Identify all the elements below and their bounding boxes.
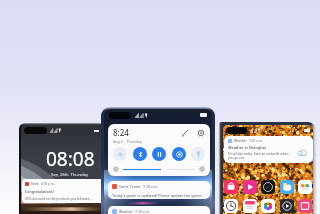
button[interactable]: App 5: [224, 199, 238, 213]
button[interactable]: Settings: [197, 129, 205, 137]
staticText: Game Center: [119, 184, 141, 189]
button[interactable]: Flashlight: [191, 147, 205, 161]
staticText: Today's game is updated! Please update t…: [112, 193, 203, 198]
button[interactable]: App 6: [243, 199, 257, 213]
button[interactable]: Store: [22, 179, 103, 203]
staticText: Weather: [234, 139, 247, 143]
staticText: Store: [31, 182, 39, 186]
button[interactable]: App 9: [298, 199, 312, 213]
staticText: Weather: [119, 209, 133, 214]
staticText: 08:08: [46, 146, 95, 172]
button[interactable]: Game Center: [108, 181, 210, 199]
staticText: 7:28 a.m.: [143, 184, 158, 189]
staticText: Weather in Shanghai: [228, 145, 266, 150]
button[interactable]: App 7: [261, 199, 275, 213]
staticText: 20% discount on the products you followe…: [25, 197, 93, 201]
button[interactable]: App 3: [280, 180, 294, 194]
staticText: Aug 6 Thursday: [113, 139, 143, 144]
staticText: 7:30 a.m.: [135, 209, 150, 214]
button[interactable]: App 4: [298, 180, 312, 194]
button[interactable]: Bluetooth: [133, 147, 147, 161]
staticText: Congratulations!: [25, 189, 54, 194]
button[interactable]: Weather: [108, 206, 210, 214]
button[interactable]: App 2: [261, 180, 275, 194]
button[interactable]: App 1: [243, 180, 257, 194]
staticText: 8:24: [113, 127, 129, 138]
staticText: 7:45 a.m.: [249, 139, 263, 143]
staticText: It's all day today. Take an umbrella whe…: [228, 152, 289, 160]
button[interactable]: Mobile data: [152, 147, 166, 161]
button[interactable]: Location: [172, 147, 186, 161]
button[interactable]: App 8: [280, 199, 294, 213]
button[interactable]: Weather: [224, 136, 313, 163]
button[interactable]: Wi-Fi: [113, 147, 127, 161]
button[interactable]: App 0: [224, 180, 238, 194]
staticText: 4:00 p.m.: [41, 182, 55, 186]
staticText: Sep, 26th Thursday: [51, 172, 89, 177]
button[interactable]: Edit: [181, 129, 189, 137]
